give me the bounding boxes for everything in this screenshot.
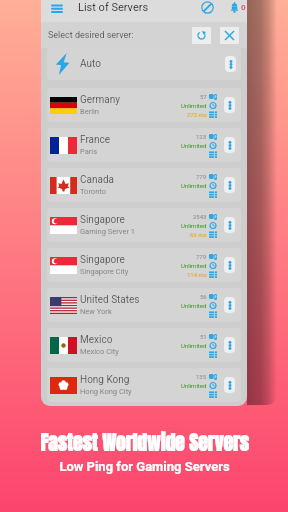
button[interactable]: Canada [47, 168, 241, 202]
staticText: Unlimited [181, 142, 207, 149]
button[interactable]: Germany [47, 88, 241, 122]
staticText: Low Ping for Gaming Servers [59, 459, 230, 474]
staticText: 123 [196, 133, 207, 140]
staticText: Singapore City [80, 267, 129, 276]
button[interactable]: Hong Kong [47, 368, 241, 402]
button[interactable]: United States [47, 288, 241, 322]
button[interactable]: More options [224, 257, 235, 273]
staticText: Hong Kong [80, 374, 130, 386]
staticText: 2543 [193, 213, 207, 220]
button[interactable]: More options [224, 177, 235, 193]
staticText: 272 ms [187, 111, 207, 118]
staticText: Hong Kong City [80, 387, 132, 396]
button[interactable]: Singapore [47, 208, 241, 242]
staticText: Unlimited [181, 342, 207, 349]
staticText: Unlimited [181, 182, 207, 189]
staticText: Mexico City [80, 347, 119, 356]
button[interactable]: Singapore [47, 248, 241, 282]
button[interactable]: More options [224, 137, 235, 153]
button[interactable]: Menu [50, 0, 64, 15]
staticText: Berlin [80, 107, 99, 116]
button[interactable]: Mexico [47, 328, 241, 362]
button[interactable]: Auto [47, 48, 241, 80]
staticText: Unlimited [181, 222, 207, 229]
staticText: Select desired server: [48, 30, 134, 41]
staticText: Canada [80, 174, 114, 186]
staticText: 63 ms [190, 231, 207, 238]
staticText: Unlimited [181, 302, 207, 309]
staticText: 779 [196, 253, 207, 260]
staticText: 56 [200, 293, 207, 300]
button[interactable]: More options [224, 337, 235, 353]
staticText: United States [80, 294, 140, 306]
staticText: Singapore [80, 214, 125, 226]
staticText: Unlimited [181, 102, 207, 109]
button[interactable]: Refresh [192, 27, 211, 44]
staticText: Auto [80, 58, 101, 70]
staticText: Unlimited [181, 382, 207, 389]
staticText: Unlimited [181, 262, 207, 269]
button[interactable]: More options [225, 56, 236, 72]
button[interactable]: Close [220, 27, 239, 44]
button[interactable]: More options [224, 297, 235, 313]
staticText: Mexico [80, 334, 113, 346]
staticText: 51 [200, 333, 207, 340]
staticText: 114 ms [187, 271, 207, 278]
staticText: 135 [196, 373, 207, 380]
button[interactable]: Remove ads [199, 0, 215, 15]
staticText: Germany [80, 94, 120, 106]
staticText: List of Servers [78, 1, 149, 14]
staticText: Paris [80, 147, 98, 156]
staticText: Fastest Worldwide Servers [40, 428, 249, 452]
button[interactable]: More options [224, 377, 235, 393]
staticText: Singapore [80, 254, 125, 266]
button[interactable]: Notifications [228, 0, 240, 15]
button[interactable]: France [47, 128, 241, 162]
button[interactable]: More options [224, 97, 235, 113]
staticText: 57 [200, 93, 207, 100]
staticText: Gaming Server 1 [80, 227, 136, 236]
staticText: New York [80, 307, 112, 316]
staticText: Toronto [80, 187, 106, 196]
staticText: France [80, 134, 111, 146]
staticText: 0 [241, 3, 246, 12]
staticText: 779 [196, 173, 207, 180]
button[interactable]: More options [224, 217, 235, 233]
